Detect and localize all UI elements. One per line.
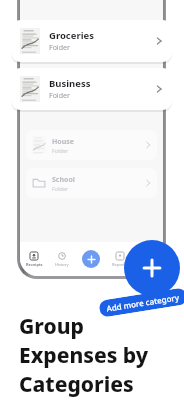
staticText: Categories bbox=[19, 370, 134, 399]
staticText: Expenses by bbox=[19, 341, 149, 370]
button[interactable]: House bbox=[26, 130, 157, 160]
button[interactable]: Business bbox=[11, 68, 172, 110]
staticText: Folder bbox=[49, 91, 70, 101]
staticText: Groceries bbox=[49, 29, 94, 42]
button[interactable]: History bbox=[48, 242, 76, 276]
staticText: Reports bbox=[112, 262, 127, 267]
button[interactable]: Add bbox=[82, 250, 100, 268]
staticText: Folder bbox=[52, 147, 69, 154]
button[interactable]: Reports bbox=[105, 242, 134, 276]
staticText: Folder bbox=[52, 185, 69, 192]
button[interactable]: Add more category bbox=[124, 240, 180, 296]
staticText: Business bbox=[49, 77, 91, 90]
staticText: Group bbox=[19, 312, 84, 341]
button[interactable]: Receipts bbox=[20, 242, 48, 276]
staticText: Receipts bbox=[26, 262, 43, 267]
staticText: My Receipts bbox=[29, 22, 82, 34]
staticText: Folder bbox=[49, 43, 70, 53]
staticText: House bbox=[52, 137, 74, 147]
button[interactable]: School bbox=[26, 168, 157, 198]
staticText: School bbox=[52, 175, 75, 185]
button[interactable]: Groceries bbox=[11, 20, 172, 62]
staticText: History bbox=[55, 262, 69, 267]
staticText: Add more category bbox=[106, 291, 180, 314]
button[interactable]: Add more category bbox=[98, 287, 184, 318]
